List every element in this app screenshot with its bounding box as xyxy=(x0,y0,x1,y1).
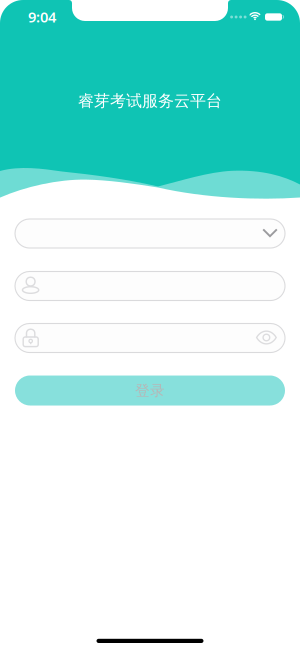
button[interactable]: 密码 xyxy=(15,323,285,352)
staticText: 9:04 xyxy=(28,7,56,26)
staticText: 登录 xyxy=(135,381,165,399)
button[interactable]: 用户名 xyxy=(15,271,285,300)
button[interactable]: 选择考试 xyxy=(15,219,285,248)
staticText: 睿芽考试服务云平台 xyxy=(78,91,222,111)
button[interactable]: 登录 xyxy=(15,375,285,405)
